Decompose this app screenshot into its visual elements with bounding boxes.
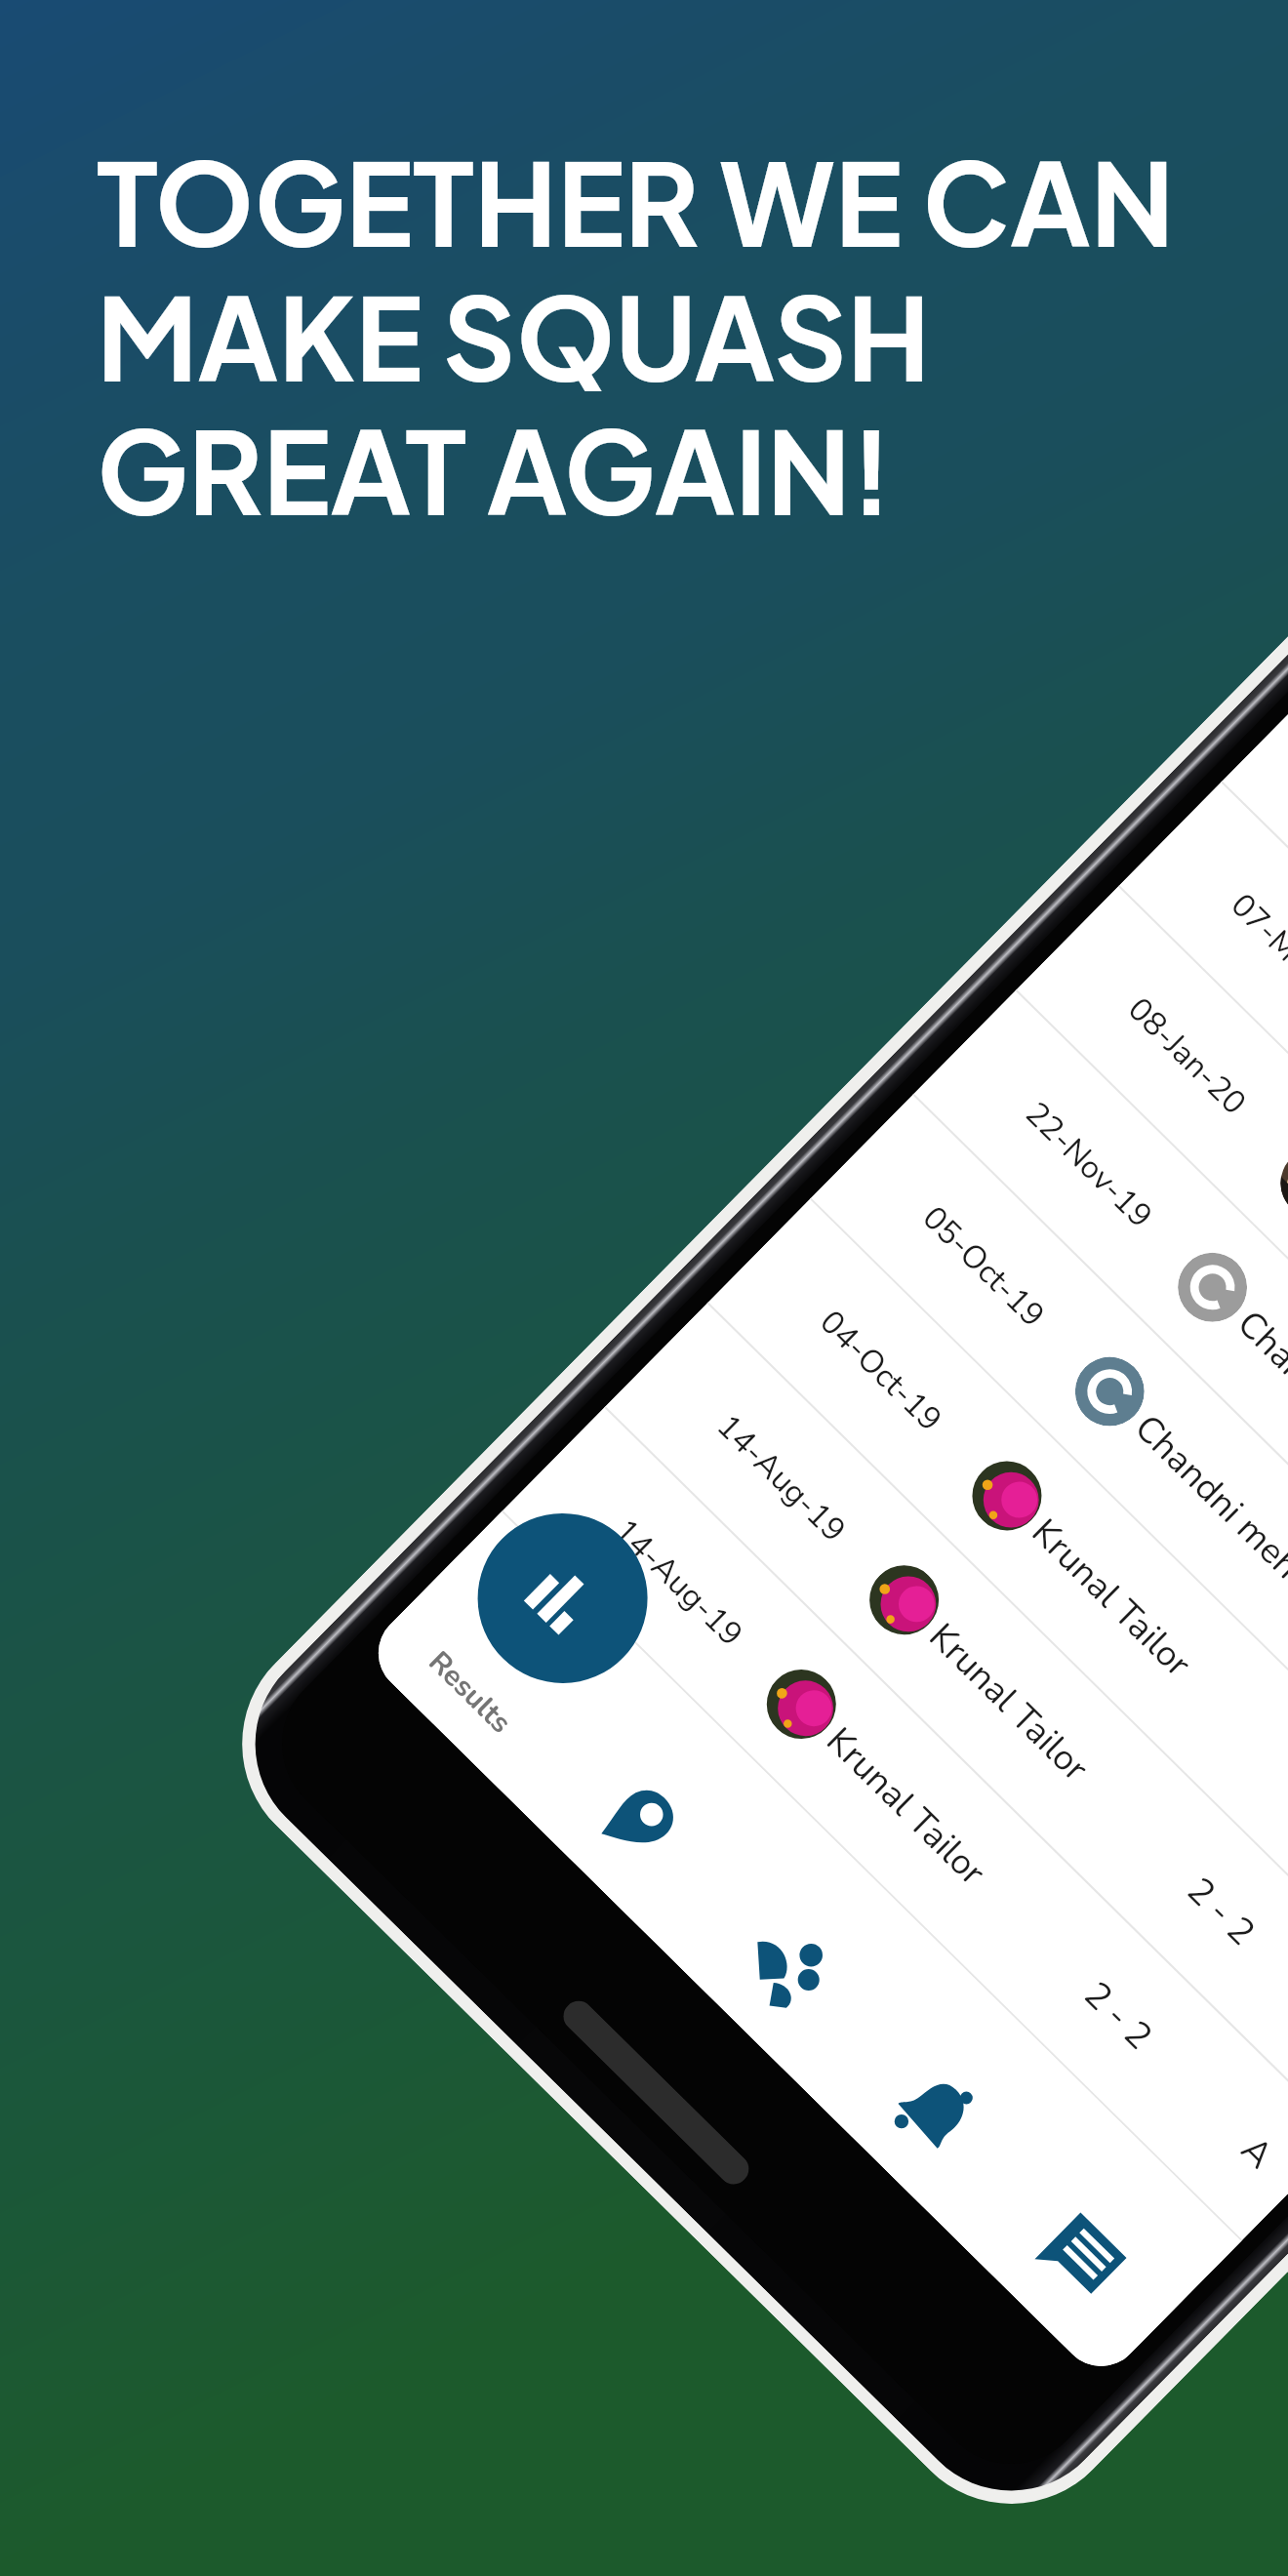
button[interactable]: Players	[657, 1804, 945, 2091]
staticText: TOGETHER WE CAN MAKE SQUASH GREAT AGAIN!	[97, 130, 1175, 541]
staticText: 07-Mar-20	[1221, 884, 1288, 1028]
staticText: Chandni mehta	[1124, 1404, 1288, 1612]
staticText: 2 - 2	[1176, 1867, 1266, 1956]
staticText: Krunal Tailor	[918, 1613, 1099, 1792]
button[interactable]: 07-Mar-20	[1119, 782, 1288, 1615]
button[interactable]: 14-Aug-19	[503, 1408, 1288, 2240]
button[interactable]: 04-Oct-19	[708, 1199, 1288, 2032]
staticText: 05-Oct-19	[913, 1197, 1054, 1337]
button[interactable]: 14-Aug-19	[605, 1303, 1288, 2136]
button[interactable]: Results	[362, 1512, 649, 1799]
staticText: 04-Oct-19	[810, 1301, 951, 1441]
staticText: 14-Aug-19	[707, 1405, 855, 1552]
button[interactable]: 22-Nov-19	[914, 991, 1288, 1823]
button[interactable]: Alerts	[805, 1949, 1093, 2237]
button[interactable]: 08-Jan-20	[1017, 886, 1288, 1719]
staticText: 08-Jan-20	[1118, 988, 1256, 1125]
staticText: Krunal Tailor	[1021, 1509, 1202, 1688]
button[interactable]: 05-Oct-19	[811, 1095, 1288, 1927]
button[interactable]: 19-Jun-20	[1222, 678, 1288, 1510]
button[interactable]: Courts	[510, 1658, 797, 1945]
staticText: Chandni mehta	[1227, 1300, 1288, 1508]
staticText: 14-Aug-19	[604, 1509, 753, 1656]
button[interactable]: Feed	[953, 2095, 1241, 2383]
staticText: 22-Nov-19	[1015, 1093, 1162, 1238]
staticText: 2 - 2	[1073, 1971, 1163, 2061]
staticText: Results	[420, 1642, 520, 1742]
staticText: Krunal Tailor	[816, 1717, 996, 1896]
staticText: A	[1230, 2126, 1283, 2179]
